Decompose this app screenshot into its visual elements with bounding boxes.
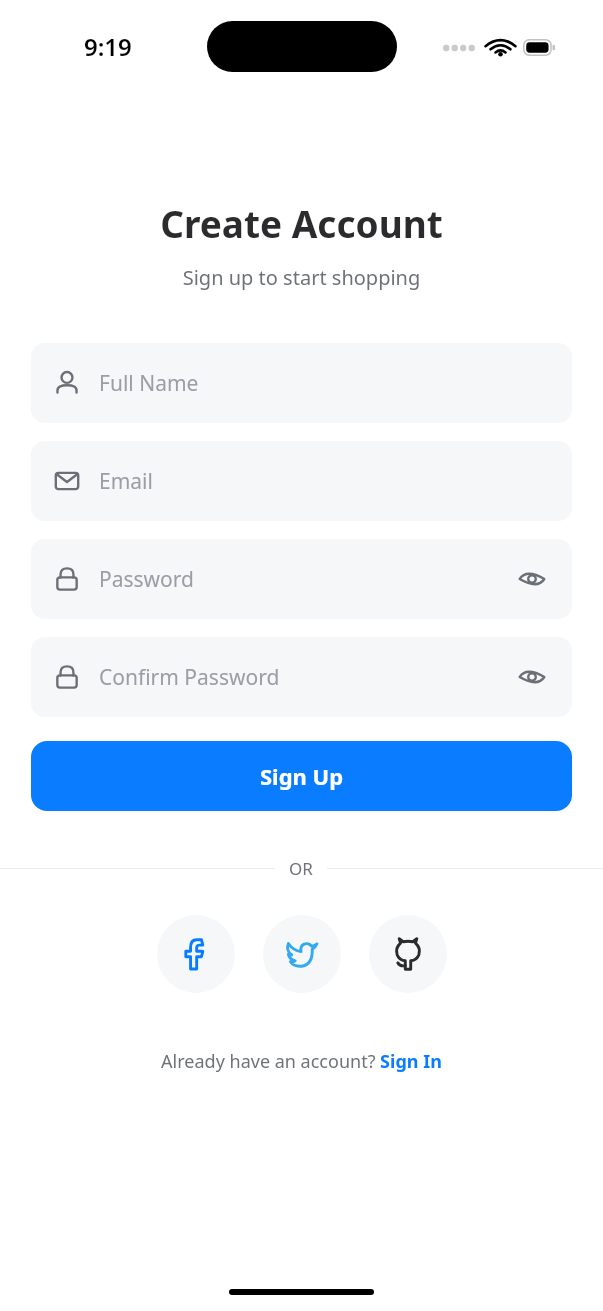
staticText: Create Account: [0, 198, 603, 248]
staticText: Full Name: [99, 369, 199, 398]
button[interactable]: Show password: [510, 557, 554, 601]
button[interactable]: Email: [31, 441, 572, 521]
staticText: Sign Up: [260, 761, 344, 791]
button[interactable]: Already have an account? Sign In: [0, 1049, 603, 1074]
button[interactable]: Sign Up: [31, 741, 572, 811]
button[interactable]: Full Name: [31, 343, 572, 423]
staticText: Password: [99, 565, 194, 594]
staticText: 9:19: [84, 30, 132, 63]
button[interactable]: Sign up with Facebook: [157, 915, 235, 993]
button[interactable]: Password: [31, 539, 572, 619]
button[interactable]: Show password: [510, 655, 554, 699]
staticText: OR: [289, 857, 313, 880]
button[interactable]: Sign up with GitHub: [369, 915, 447, 993]
button[interactable]: Confirm Password: [31, 637, 572, 717]
staticText: Confirm Password: [99, 663, 280, 692]
button[interactable]: Sign up with Twitter: [263, 915, 341, 993]
staticText: Already have an account? Sign In: [161, 1049, 442, 1074]
staticText: Sign up to start shopping: [0, 264, 603, 291]
staticText: Email: [99, 467, 153, 496]
